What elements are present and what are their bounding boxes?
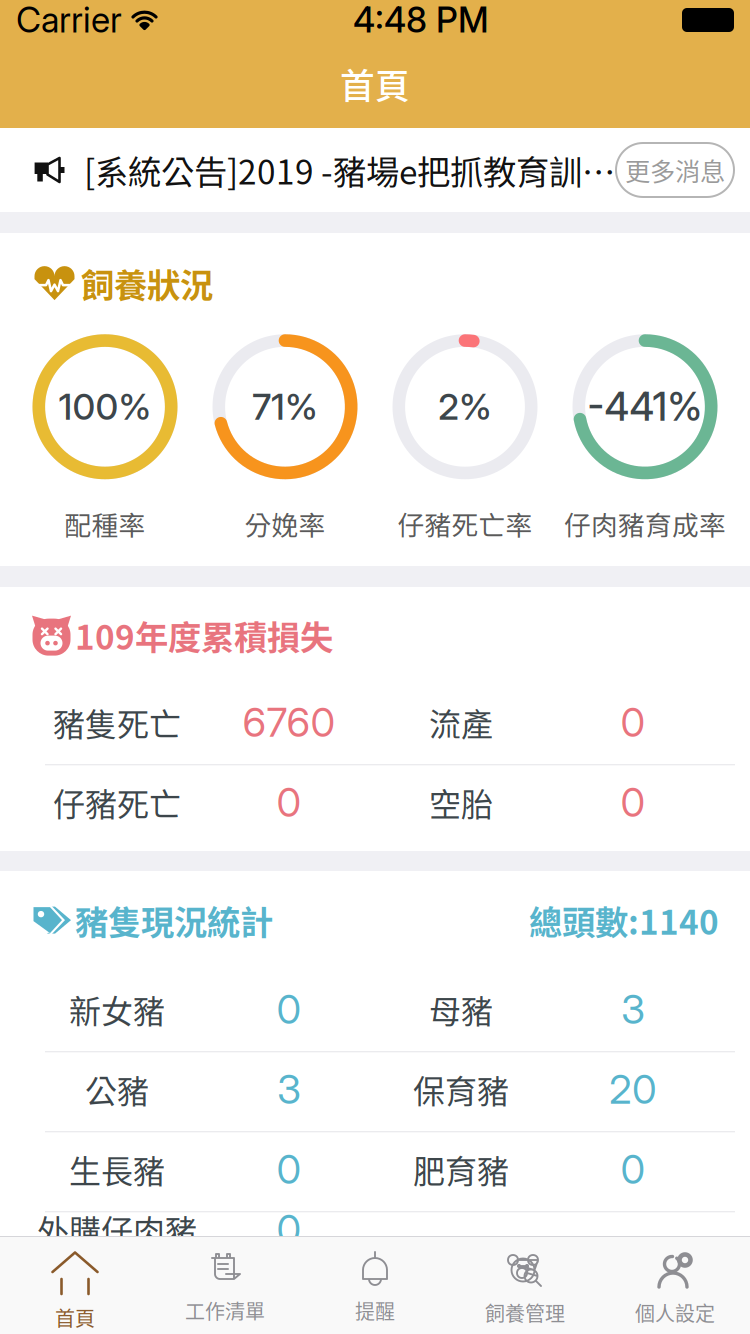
staticText: 新女豬 bbox=[69, 986, 165, 1032]
staticText: 仔豬死亡 bbox=[53, 779, 181, 825]
staticText: 飼養管理 bbox=[485, 1298, 565, 1327]
staticText: 0 bbox=[620, 778, 645, 826]
staticText: 流產 bbox=[429, 699, 493, 745]
staticText: 仔肉豬育成率 bbox=[564, 504, 726, 543]
staticText: 71% bbox=[252, 385, 318, 429]
staticText: 0 bbox=[276, 1205, 301, 1253]
staticText: 個人設定 bbox=[635, 1298, 715, 1327]
staticText: 2% bbox=[438, 385, 492, 429]
staticText: 分娩率 bbox=[244, 504, 325, 543]
staticText: 首頁 bbox=[55, 1303, 95, 1332]
staticText: Carrier bbox=[16, 0, 122, 41]
staticText: 100% bbox=[58, 385, 151, 429]
staticText: 0 bbox=[620, 1145, 645, 1193]
staticText: 0 bbox=[276, 1145, 301, 1193]
staticText: 4:48 PM bbox=[353, 0, 489, 41]
staticText: 飼養狀況 bbox=[81, 259, 213, 307]
staticText: 豬隻死亡 bbox=[53, 699, 181, 745]
staticText: 肥育豬 bbox=[413, 1146, 509, 1192]
staticText: 母豬 bbox=[429, 986, 493, 1032]
staticText: 0 bbox=[276, 778, 301, 826]
staticText: 配種率 bbox=[64, 504, 145, 543]
staticText: 總頭數:1140 bbox=[529, 896, 719, 944]
staticText: 公豬 bbox=[85, 1066, 149, 1112]
staticText: 首頁 bbox=[340, 59, 410, 109]
staticText: 生長豬 bbox=[69, 1146, 165, 1192]
button[interactable]: 個人設定 bbox=[600, 1236, 750, 1334]
staticText: 3 bbox=[621, 985, 645, 1033]
staticText: -441% bbox=[587, 383, 702, 430]
staticText: 更多消息 bbox=[625, 152, 725, 188]
staticText: [系統公告]2019 -豬場e把抓教育訓練通 bbox=[84, 146, 629, 194]
staticText: 保育豬 bbox=[413, 1066, 509, 1112]
button[interactable]: 工作清單 bbox=[150, 1236, 300, 1334]
button[interactable]: 提醒 bbox=[300, 1236, 450, 1334]
staticText: 3 bbox=[277, 1065, 301, 1113]
button[interactable]: 飼養管理 bbox=[450, 1236, 600, 1334]
staticText: 仔豬死亡率 bbox=[397, 504, 532, 543]
button[interactable]: 更多消息 bbox=[616, 143, 734, 197]
button[interactable]: 首頁 bbox=[0, 1236, 150, 1334]
staticText: 提醒 bbox=[355, 1296, 395, 1325]
staticText: 豬隻現況統計 bbox=[75, 896, 273, 944]
staticText: 0 bbox=[276, 985, 301, 1033]
staticText: 工作清單 bbox=[185, 1296, 265, 1325]
staticText: 0 bbox=[620, 698, 645, 746]
staticText: 6760 bbox=[242, 698, 335, 746]
staticText: 空胎 bbox=[429, 779, 493, 825]
staticText: 外購仔肉豬 bbox=[37, 1206, 197, 1252]
staticText: 20 bbox=[609, 1065, 657, 1113]
staticText: 109年度累積損失 bbox=[75, 611, 333, 659]
